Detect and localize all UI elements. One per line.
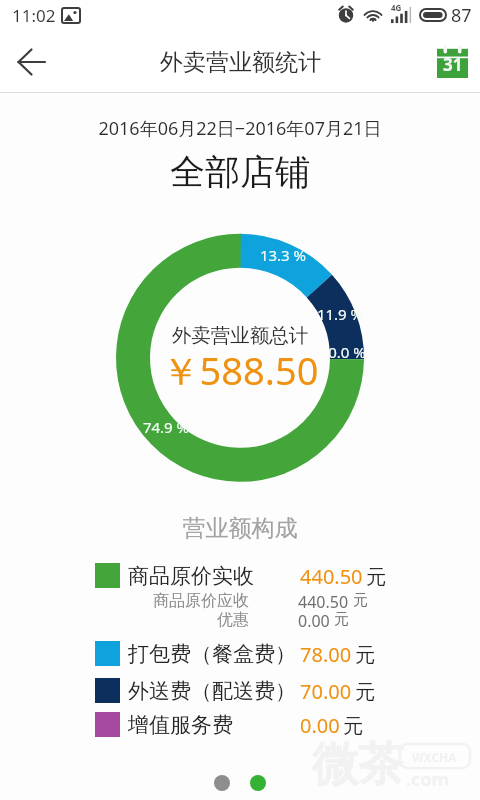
staticText: 外卖营业额总计 — [0, 323, 480, 348]
staticText: 0.00 — [300, 712, 340, 737]
staticText: 440.50 — [300, 563, 363, 588]
button[interactable]: 外送费（配送费） — [0, 678, 480, 703]
staticText: 元 — [343, 714, 363, 739]
button[interactable]: Back — [0, 30, 62, 93]
staticText: 增值服务费 — [128, 712, 233, 737]
staticText: 11:02 — [12, 4, 56, 27]
button[interactable]: Select date — [424, 30, 480, 93]
staticText: 13.3 % — [248, 245, 318, 265]
staticText: 78.00 — [300, 641, 352, 666]
staticText: 外送费（配送费） — [128, 678, 296, 703]
staticText: 87 — [451, 3, 472, 28]
button[interactable]: Page 1 — [214, 775, 230, 791]
button[interactable]: Page 2 — [250, 775, 266, 791]
staticText: .com — [406, 767, 450, 792]
button[interactable]: 打包费（餐盒费） — [0, 641, 480, 666]
staticText: 打包费（餐盒费） — [128, 641, 296, 666]
staticText: 元 — [355, 643, 375, 668]
staticText: 营业额构成 — [0, 514, 480, 543]
staticText: 元 — [366, 565, 386, 590]
staticText: 商品原价应收 — [140, 591, 249, 609]
staticText: 外卖营业额统计 — [160, 48, 321, 77]
staticText: 440.50 — [298, 591, 349, 609]
staticText: 31 — [443, 53, 463, 76]
staticText: 74.9 % — [131, 417, 201, 437]
staticText: 0.00 — [298, 610, 330, 628]
staticText: 70.00 — [300, 678, 352, 703]
staticText: 元 — [353, 591, 368, 609]
button[interactable]: 增值服务费 — [0, 712, 480, 737]
staticText: 元 — [355, 680, 375, 705]
staticText: 商品原价实收 — [128, 563, 254, 588]
staticText: WXCHA — [412, 749, 457, 765]
staticText: 优惠 — [140, 610, 249, 628]
staticText: 11.9 % — [305, 304, 375, 324]
staticText: 全部店铺 — [0, 150, 480, 194]
staticText: 元 — [334, 610, 349, 628]
staticText: 4G — [391, 2, 402, 13]
button[interactable]: 商品原价实收 — [0, 563, 480, 588]
staticText: 2016年06月22日−2016年07月21日 — [0, 116, 480, 141]
staticText: 0.0 % — [312, 342, 382, 362]
staticText: ￥588.50 — [0, 344, 480, 396]
staticText: 微茶 — [312, 736, 404, 794]
